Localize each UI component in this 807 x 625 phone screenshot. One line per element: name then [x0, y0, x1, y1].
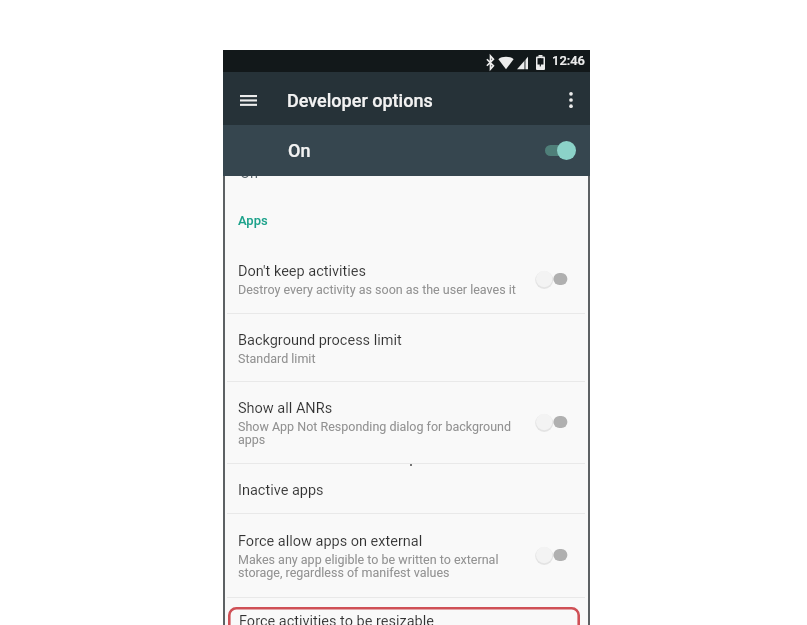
staticText: Developer options: [287, 90, 433, 111]
button[interactable]: Force activities to be resizable: [228, 607, 580, 625]
staticText: Makes any app eligible to be written to …: [238, 552, 499, 580]
button[interactable]: Don't keep activities: [223, 263, 590, 316]
staticText: Background process limit: [238, 332, 402, 349]
button[interactable]: Background process limit: [223, 332, 590, 384]
button[interactable]: More options: [552, 81, 590, 119]
button[interactable]: On: [223, 125, 590, 176]
button[interactable]: Open navigation drawer: [227, 79, 269, 121]
staticText: Don't keep activities: [238, 263, 366, 280]
button[interactable]: Apps: [238, 213, 268, 228]
staticText: On: [288, 140, 311, 161]
staticText: Show App Not Responding dialog for backg…: [238, 419, 512, 447]
staticText: Destroy every activity as soon as the us…: [238, 282, 516, 297]
staticText: Inactive apps: [238, 482, 324, 499]
staticText: Force allow apps on external: [238, 533, 423, 550]
staticText: Standard limit: [238, 351, 316, 366]
staticText: Force activities to be resizable: [239, 613, 434, 625]
staticText: On: [240, 176, 258, 182]
button[interactable]: Force allow apps on external: [223, 533, 590, 599]
staticText: Show all ANRs: [238, 400, 333, 417]
button[interactable]: Inactive apps: [223, 482, 590, 515]
staticText: 12:46: [552, 53, 586, 68]
button[interactable]: Show all ANRs: [223, 400, 590, 466]
